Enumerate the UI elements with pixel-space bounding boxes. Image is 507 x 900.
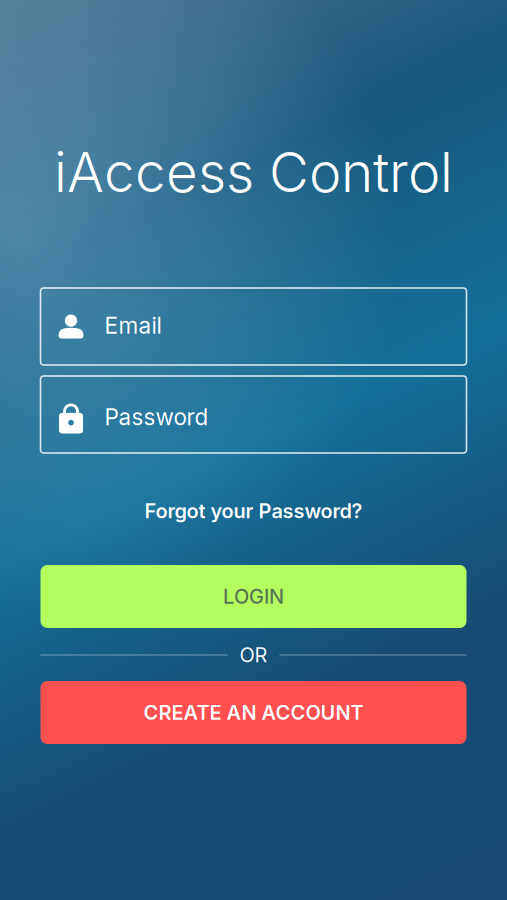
staticText: CREATE AN ACCOUNT <box>143 700 363 725</box>
staticText: OR <box>239 643 267 667</box>
staticText: Email <box>104 312 161 339</box>
button[interactable]: Forgot your Password? <box>40 488 466 534</box>
staticText: LOGIN <box>223 584 284 609</box>
button[interactable]: LOGIN <box>40 565 466 628</box>
button[interactable]: CREATE AN ACCOUNT <box>40 681 466 744</box>
staticText: Password <box>104 403 208 431</box>
staticText: iAccess Control <box>54 139 453 205</box>
staticText: Forgot your Password? <box>144 499 362 523</box>
